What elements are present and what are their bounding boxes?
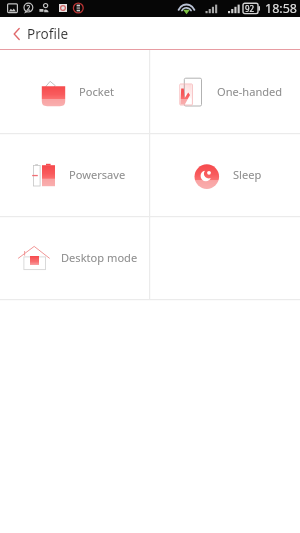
staticText: Pocket xyxy=(79,84,114,99)
button[interactable]: Sleep xyxy=(150,133,300,216)
staticText: Powersave xyxy=(69,167,126,182)
button[interactable]: Desktop mode xyxy=(0,216,150,299)
button[interactable]: One-handed xyxy=(150,50,300,133)
staticText: One-handed xyxy=(217,84,283,99)
other: Back xyxy=(13,28,20,40)
staticText: Desktop mode xyxy=(61,250,138,265)
staticText: 18:58 xyxy=(265,0,297,17)
button[interactable]: Back xyxy=(0,17,300,50)
staticText: Profile xyxy=(27,24,69,43)
button[interactable]: Powersave xyxy=(0,133,150,216)
staticText: 92 xyxy=(245,3,255,14)
button[interactable]: Pocket xyxy=(0,50,150,133)
staticText: Sleep xyxy=(233,167,262,182)
